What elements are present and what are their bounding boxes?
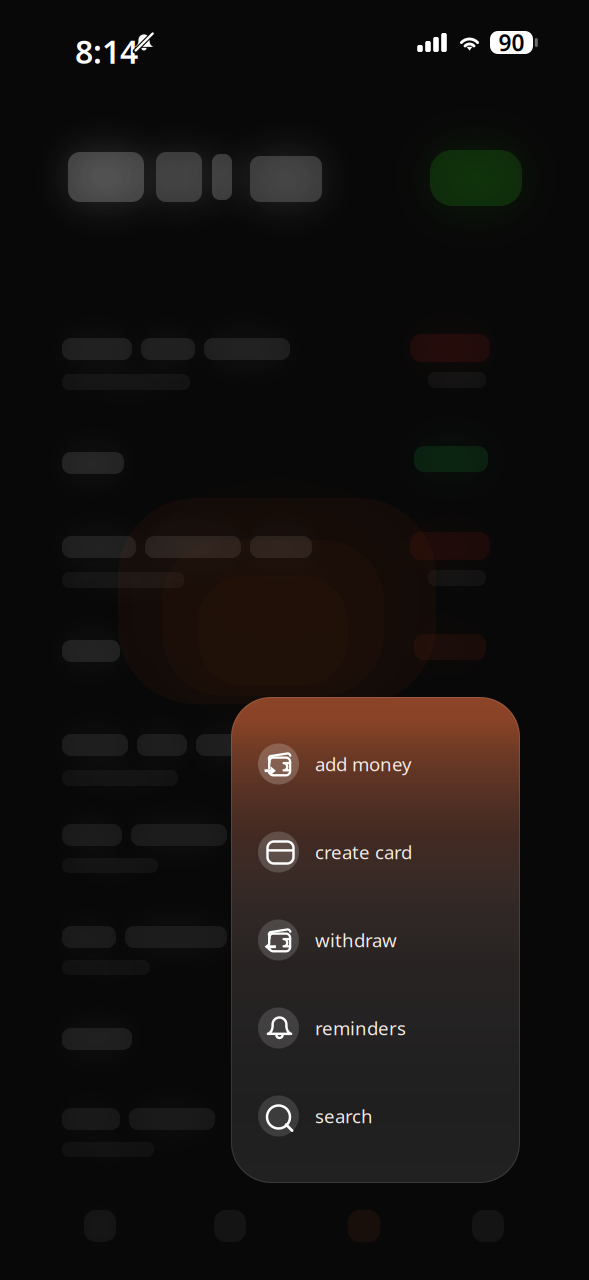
button[interactable]: withdraw (231, 896, 520, 984)
staticText: 90 (498, 27, 524, 57)
button[interactable]: reminders (231, 984, 520, 1072)
staticText: withdraw (315, 928, 397, 952)
staticText: 8:14 (75, 30, 138, 72)
button[interactable]: search (231, 1072, 520, 1160)
staticText: reminders (315, 1016, 406, 1040)
staticText: add money (315, 752, 412, 776)
button[interactable]: add money (231, 720, 520, 808)
staticText: create card (315, 840, 412, 864)
staticText: search (315, 1104, 373, 1128)
button[interactable]: create card (231, 808, 520, 896)
